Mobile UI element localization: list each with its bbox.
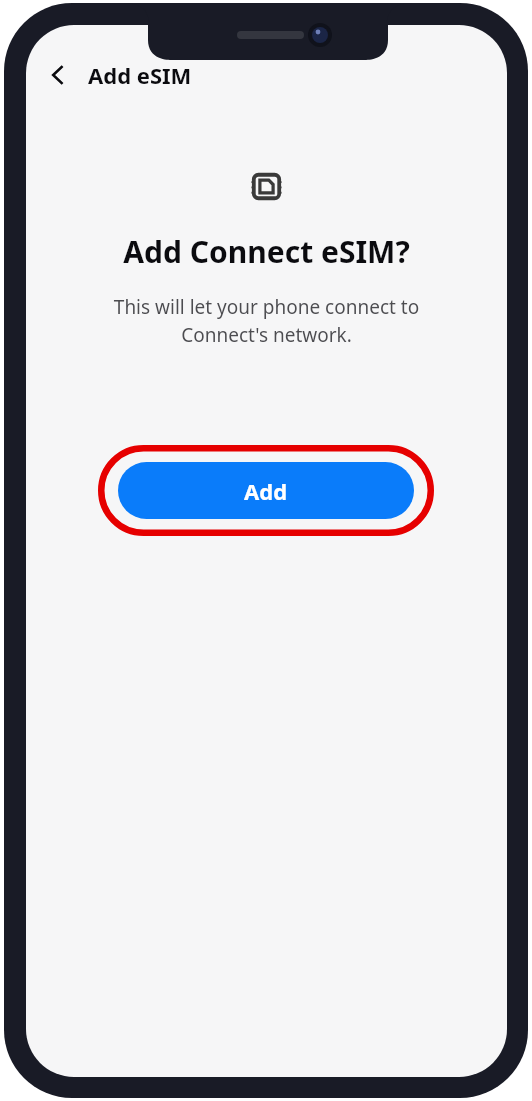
staticText: Add Connect eSIM?	[123, 231, 410, 272]
button[interactable]: Add	[118, 462, 414, 519]
staticText: Add	[244, 476, 288, 506]
staticText: Add eSIM	[88, 60, 192, 90]
button[interactable]: Back	[38, 55, 78, 95]
staticText: This will let your phone connect to Conn…	[86, 294, 447, 348]
